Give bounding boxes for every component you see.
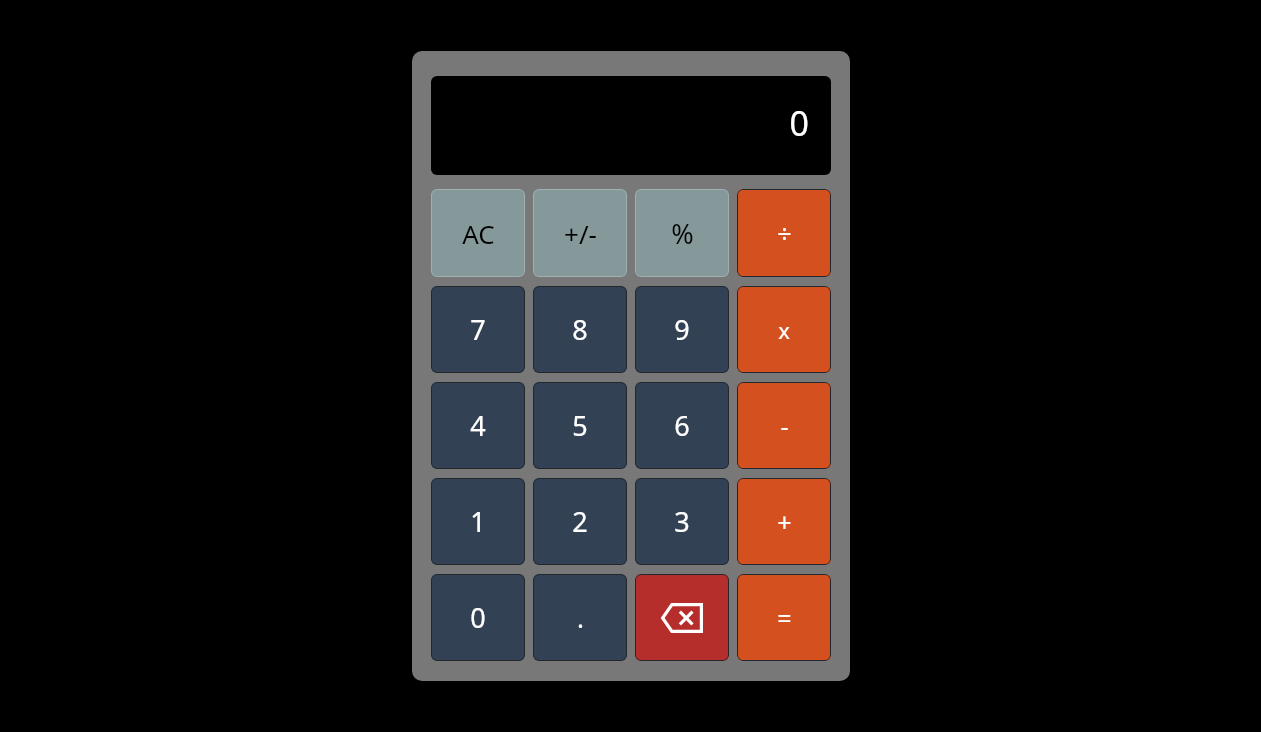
button[interactable]: =	[737, 574, 831, 661]
button[interactable]: 0	[431, 574, 525, 661]
button[interactable]: 7	[431, 286, 525, 373]
button[interactable]: 5	[533, 382, 627, 469]
staticText: %	[671, 215, 694, 252]
button[interactable]: %	[635, 189, 729, 277]
staticText: =	[777, 601, 792, 635]
staticText: +/-	[564, 216, 597, 251]
staticText: 7	[470, 311, 486, 348]
staticText: +	[777, 505, 792, 539]
staticText: AC	[462, 216, 495, 251]
button[interactable]: 3	[635, 478, 729, 565]
staticText: 8	[572, 311, 588, 348]
button[interactable]: -	[737, 382, 831, 469]
button[interactable]: +/-	[533, 189, 627, 277]
staticText: 0	[470, 599, 486, 636]
staticText: 6	[674, 407, 690, 444]
staticText: 9	[674, 311, 690, 348]
button[interactable]: +	[737, 478, 831, 565]
staticText: x	[778, 315, 790, 345]
button[interactable]: Backspace	[635, 574, 729, 661]
button[interactable]: 4	[431, 382, 525, 469]
button[interactable]: x	[737, 286, 831, 373]
button[interactable]: ÷	[737, 189, 831, 277]
button[interactable]: 6	[635, 382, 729, 469]
button[interactable]: 2	[533, 478, 627, 565]
button[interactable]: AC	[431, 189, 525, 277]
button[interactable]: .	[533, 574, 627, 661]
staticText: -	[780, 409, 789, 443]
staticText: 4	[470, 407, 486, 444]
staticText: 1	[470, 503, 486, 540]
staticText: 0	[789, 100, 809, 146]
staticText: 2	[572, 503, 588, 540]
button[interactable]: 1	[431, 478, 525, 565]
staticText: ÷	[777, 216, 792, 250]
staticText: .	[577, 600, 584, 635]
button[interactable]: 8	[533, 286, 627, 373]
staticText: 3	[674, 503, 690, 540]
button[interactable]: 9	[635, 286, 729, 373]
staticText: 5	[572, 407, 588, 444]
